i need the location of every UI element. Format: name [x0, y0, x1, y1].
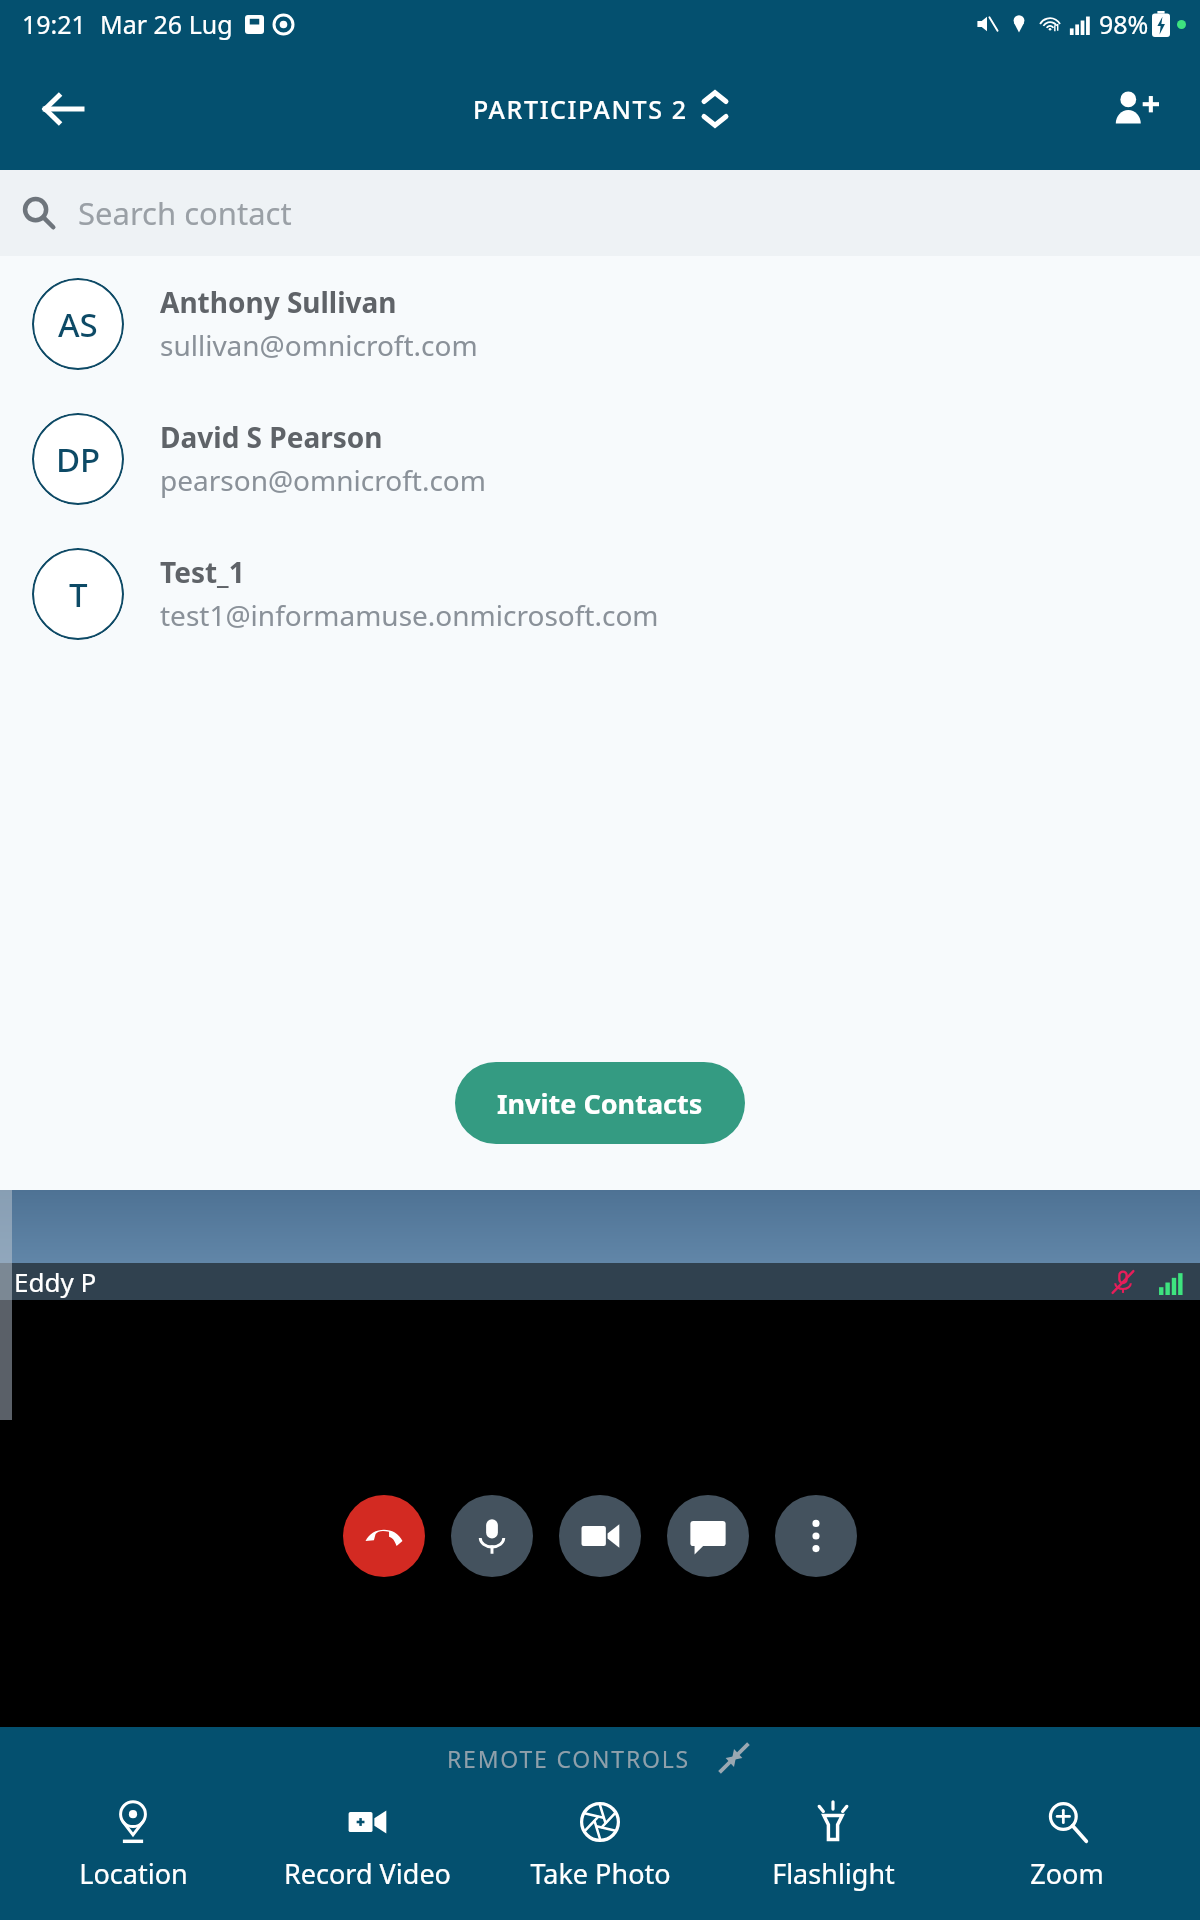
staticText: 98%	[1099, 7, 1149, 41]
button[interactable]: Invite Contacts	[455, 1062, 745, 1144]
button[interactable]: Video	[559, 1495, 641, 1577]
button[interactable]: More options	[775, 1495, 857, 1577]
staticText: test1@informamuse.onmicrosoft.com	[160, 596, 659, 634]
button[interactable]: Zoom	[967, 1795, 1167, 1896]
button[interactable]: T	[0, 526, 1200, 661]
staticText: 19:21	[22, 7, 86, 41]
staticText: Anthony Sullivan	[160, 283, 397, 321]
button[interactable]: PARTICIPANTS 2	[473, 87, 728, 131]
staticText: Eddy P	[14, 1264, 97, 1299]
staticText: Zoom	[1030, 1855, 1104, 1892]
staticText: AS	[58, 302, 98, 347]
staticText: Take Photo	[530, 1855, 671, 1892]
staticText: Record Video	[284, 1855, 451, 1892]
staticText: sullivan@omnicroft.com	[160, 326, 478, 364]
button[interactable]: Location	[33, 1795, 233, 1896]
button[interactable]: REMOTE CONTROLS	[0, 1739, 1200, 1777]
button[interactable]: DP	[0, 391, 1200, 526]
button[interactable]: Back	[30, 77, 94, 141]
staticText: Test_1	[160, 553, 245, 591]
staticText: DP	[56, 437, 101, 482]
staticText: Mar 26 Lug	[100, 7, 233, 41]
button[interactable]: End call	[343, 1495, 425, 1577]
button[interactable]: Chat	[667, 1495, 749, 1577]
staticText: pearson@omnicroft.com	[160, 461, 486, 499]
staticText: Invite Contacts	[497, 1085, 703, 1122]
staticText: PARTICIPANTS 2	[473, 92, 688, 126]
button[interactable]: Take Photo	[500, 1795, 700, 1896]
staticText: Location	[79, 1855, 188, 1892]
button[interactable]: Mute	[451, 1495, 533, 1577]
button[interactable]: Flashlight	[733, 1795, 933, 1896]
button[interactable]: AS	[0, 256, 1200, 391]
button[interactable]: Record Video	[267, 1795, 467, 1896]
staticText: REMOTE CONTROLS	[447, 1743, 691, 1774]
staticText: T	[69, 572, 88, 617]
button[interactable]: Add participant	[1100, 74, 1170, 144]
staticText: David S Pearson	[160, 418, 383, 456]
staticText: Search contact	[78, 192, 292, 234]
staticText: Flashlight	[772, 1855, 895, 1892]
button[interactable]: Search contact	[0, 170, 1200, 256]
